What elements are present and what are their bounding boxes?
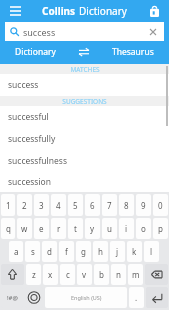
button[interactable]: v xyxy=(77,264,92,285)
staticText: a xyxy=(14,246,19,257)
button[interactable]: Menu xyxy=(5,1,25,21)
button[interactable]: success xyxy=(0,74,169,96)
staticText: success xyxy=(23,26,56,38)
button[interactable]: b xyxy=(94,264,109,285)
staticText: success xyxy=(8,79,39,91)
staticText: Thesaurus xyxy=(112,46,154,58)
button[interactable]: !#@ xyxy=(1,287,23,308)
staticText: SUGGESTIONS xyxy=(62,97,107,106)
staticText: English (US) xyxy=(71,294,102,301)
button[interactable]: w xyxy=(17,218,32,239)
staticText: 5 xyxy=(73,200,78,211)
staticText: b xyxy=(99,269,104,280)
button[interactable]: successful xyxy=(0,106,169,128)
staticText: 6 xyxy=(90,200,95,211)
staticText: successfully xyxy=(8,133,56,145)
staticText: w xyxy=(21,223,28,234)
staticText: n xyxy=(116,269,121,280)
button[interactable]: English (US) xyxy=(45,287,127,308)
button[interactable]: Enter xyxy=(146,287,168,308)
button[interactable]: f xyxy=(59,241,74,262)
button[interactable]: successfulness xyxy=(0,150,169,172)
button[interactable]: k xyxy=(127,241,142,262)
button[interactable]: h xyxy=(93,241,108,262)
staticText: 3 xyxy=(39,200,44,211)
button[interactable]: a xyxy=(9,241,23,262)
staticText: j xyxy=(116,246,119,257)
staticText: . xyxy=(135,292,138,303)
button[interactable]: x xyxy=(43,264,58,285)
staticText: successful xyxy=(8,111,49,123)
button[interactable]: p xyxy=(153,218,168,239)
button[interactable]: g xyxy=(76,241,91,262)
button[interactable]: 9 xyxy=(136,194,151,216)
button[interactable]: 3 xyxy=(34,194,49,216)
button[interactable]: u xyxy=(102,218,117,239)
button[interactable]: Clear xyxy=(147,26,159,38)
staticText: successfulness xyxy=(8,155,67,167)
button[interactable]: 4 xyxy=(51,194,66,216)
button[interactable]: t xyxy=(68,218,83,239)
button[interactable]: 1 xyxy=(1,194,15,216)
staticText: e xyxy=(39,223,44,234)
staticText: Collins xyxy=(42,4,76,18)
button[interactable]: i xyxy=(119,218,134,239)
button[interactable]: o xyxy=(136,218,151,239)
button[interactable]: Store xyxy=(145,2,163,20)
button[interactable]: r xyxy=(51,218,66,239)
button[interactable]: 5 xyxy=(68,194,83,216)
staticText: t xyxy=(74,223,77,234)
staticText: f xyxy=(65,246,68,257)
staticText: h xyxy=(98,246,103,257)
button[interactable]: Swap dictionary and thesaurus xyxy=(71,41,97,62)
button[interactable]: Keyboard settings xyxy=(25,287,43,308)
button[interactable]: 0 xyxy=(153,194,168,216)
staticText: 9 xyxy=(141,200,146,211)
button[interactable]: l xyxy=(144,241,159,262)
button[interactable]: success xyxy=(5,22,164,41)
staticText: z xyxy=(32,269,36,280)
button[interactable]: d xyxy=(42,241,57,262)
button[interactable]: s xyxy=(25,241,40,262)
staticText: d xyxy=(47,246,52,257)
staticText: Dictionary xyxy=(79,4,127,18)
staticText: c xyxy=(66,269,70,280)
staticText: Dictionary xyxy=(15,46,56,58)
button[interactable]: 6 xyxy=(85,194,100,216)
staticText: p xyxy=(158,223,163,234)
button[interactable]: Thesaurus xyxy=(97,41,169,62)
staticText: g xyxy=(81,246,86,257)
staticText: q xyxy=(6,223,11,234)
button[interactable]: c xyxy=(60,264,75,285)
staticText: v xyxy=(82,269,87,280)
button[interactable]: 7 xyxy=(102,194,117,216)
staticText: s xyxy=(31,246,35,257)
staticText: succession xyxy=(8,176,52,188)
button[interactable]: m xyxy=(128,264,143,285)
button[interactable]: 2 xyxy=(17,194,32,216)
button[interactable]: q xyxy=(1,218,15,239)
staticText: m xyxy=(132,269,140,280)
staticText: 2 xyxy=(22,200,27,211)
staticText: 4 xyxy=(56,200,61,211)
button[interactable]: Dictionary xyxy=(0,41,71,62)
staticText: MATCHES xyxy=(70,65,100,74)
staticText: y xyxy=(90,223,95,234)
button[interactable]: successfully xyxy=(0,128,169,150)
button[interactable]: Backspace xyxy=(145,264,168,285)
button[interactable]: j xyxy=(110,241,125,262)
button[interactable]: succession xyxy=(0,172,169,192)
button[interactable]: n xyxy=(111,264,126,285)
button[interactable]: y xyxy=(85,218,100,239)
staticText: 7 xyxy=(107,200,112,211)
staticText: l xyxy=(150,246,153,257)
button[interactable]: . xyxy=(129,287,144,308)
button[interactable]: Shift xyxy=(1,264,24,285)
staticText: 0 xyxy=(158,200,163,211)
button[interactable]: z xyxy=(26,264,41,285)
staticText: 1 xyxy=(6,200,11,211)
button[interactable]: e xyxy=(34,218,49,239)
staticText: 8 xyxy=(124,200,129,211)
button[interactable]: 8 xyxy=(119,194,134,216)
staticText: i xyxy=(125,223,128,234)
